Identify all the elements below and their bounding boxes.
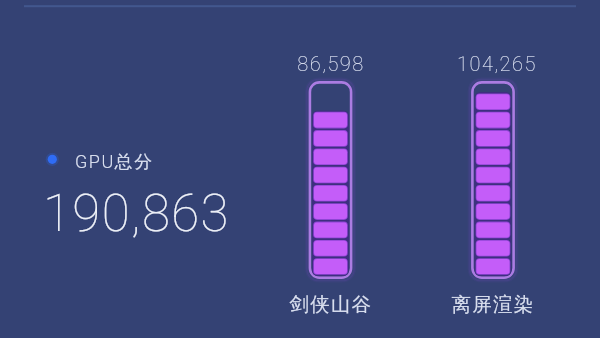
button[interactable]: 剑侠山谷 — [251, 292, 411, 318]
button[interactable]: 离屏渲染 104,265 — [417, 45, 577, 295]
button[interactable]: 剑侠山谷 86,598 — [251, 45, 411, 295]
staticText: 104,265 — [417, 52, 577, 75]
button[interactable]: GPU总分 — [0, 143, 260, 243]
button[interactable]: 离屏渲染 — [413, 292, 573, 318]
staticText: GPU总分 — [75, 151, 255, 174]
staticText: 剑侠山谷 — [251, 292, 411, 318]
staticText: 190,863 — [43, 184, 303, 244]
staticText: 离屏渲染 — [413, 292, 573, 318]
staticText: 86,598 — [251, 52, 411, 75]
